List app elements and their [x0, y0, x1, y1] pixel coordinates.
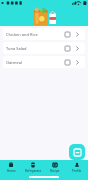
- staticText: Profile: [72, 169, 82, 173]
- button[interactable]: Profile: [66, 160, 88, 174]
- button[interactable]: Home: [0, 160, 22, 174]
- button[interactable]: Open Chicken and Rice: [73, 30, 82, 39]
- staticText: Refrigerate: [25, 169, 42, 173]
- button[interactable]: Open Tuna Salad: [73, 44, 82, 53]
- staticText: Oatmeal: [6, 60, 63, 65]
- button[interactable]: Recipe: [44, 160, 66, 174]
- button[interactable]: Refrigerate: [22, 160, 44, 174]
- button[interactable]: Toggle Oatmeal: [63, 58, 72, 67]
- staticText: Tuna Salad: [6, 46, 63, 51]
- staticText: Recipe: [50, 169, 60, 173]
- button[interactable]: Tuna Salad: [3, 42, 85, 54]
- staticText: Chicken and Rice: [6, 32, 63, 37]
- button[interactable]: Toggle Chicken and Rice: [63, 30, 72, 39]
- button[interactable]: Oatmeal: [3, 56, 85, 68]
- button[interactable]: Open Oatmeal: [73, 58, 82, 67]
- button[interactable]: Toggle Tuna Salad: [63, 44, 72, 53]
- button[interactable]: Chicken and Rice: [3, 28, 85, 40]
- button[interactable]: Add item: [69, 144, 85, 160]
- staticText: Home: [7, 169, 16, 173]
